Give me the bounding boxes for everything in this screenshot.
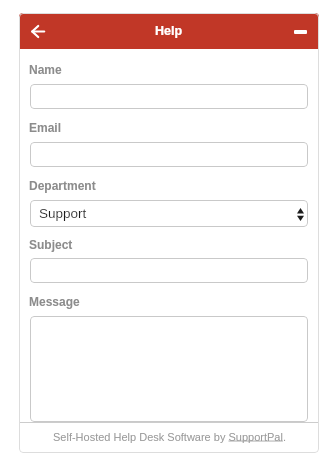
staticText: Support bbox=[39, 206, 87, 221]
staticText: Help bbox=[155, 24, 183, 38]
staticText: Email bbox=[29, 121, 62, 134]
button[interactable] bbox=[25, 19, 51, 44]
staticText: Message bbox=[29, 295, 80, 308]
staticText: Name bbox=[29, 63, 62, 76]
button[interactable] bbox=[30, 316, 308, 422]
button[interactable] bbox=[288, 24, 313, 39]
button[interactable]: Support bbox=[30, 200, 308, 227]
staticText: Subject bbox=[29, 238, 73, 251]
button[interactable]: Self-Hosted Help Desk Software by Suppor… bbox=[53, 431, 286, 443]
button[interactable] bbox=[30, 258, 308, 283]
button[interactable] bbox=[30, 142, 308, 167]
staticText: Department bbox=[29, 179, 96, 192]
button[interactable] bbox=[30, 84, 308, 109]
